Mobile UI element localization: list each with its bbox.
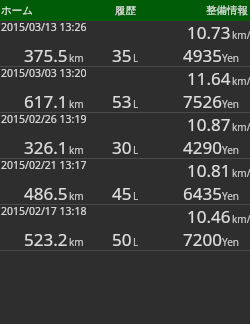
staticText: km/L	[232, 120, 250, 134]
staticText: 10.73	[187, 21, 231, 44]
staticText: ホーム	[1, 4, 33, 17]
staticText: 整備情報	[206, 4, 248, 17]
staticText: Yen	[222, 143, 239, 157]
staticText: L	[133, 143, 139, 157]
staticText: 326.1	[24, 136, 68, 159]
staticText: 523.2	[24, 228, 68, 251]
staticText: km/L	[232, 28, 250, 42]
staticText: 35	[112, 44, 132, 67]
staticText: 10.81	[187, 159, 231, 182]
staticText: L	[133, 189, 139, 203]
staticText: 履歴	[115, 4, 136, 17]
staticText: 10.46	[187, 205, 231, 228]
staticText: 11.64	[187, 67, 231, 90]
staticText: 2015/03/03 13:20	[1, 66, 87, 80]
staticText: 375.5	[24, 44, 68, 67]
staticText: km	[69, 97, 84, 111]
button[interactable]: 2015/02/21 13:17	[0, 159, 250, 204]
staticText: km/L	[232, 212, 250, 226]
staticText: Yen	[222, 235, 239, 249]
staticText: L	[133, 97, 139, 111]
staticText: 30	[112, 136, 132, 159]
button[interactable]: 2015/02/26 13:19	[0, 113, 250, 158]
staticText: 10.87	[187, 113, 231, 136]
staticText: 486.5	[24, 182, 68, 205]
staticText: 6435	[183, 182, 222, 205]
staticText: km	[69, 51, 84, 65]
staticText: Yen	[222, 51, 239, 65]
button[interactable]: 2015/03/13 13:26	[0, 21, 250, 66]
button[interactable]: 履歴	[84, 0, 167, 21]
staticText: 2015/02/21 13:17	[1, 158, 87, 172]
staticText: 45	[112, 182, 132, 205]
button[interactable]: 2015/03/03 13:20	[0, 67, 250, 112]
button[interactable]: 2015/02/17 13:18	[0, 205, 250, 250]
staticText: km	[69, 189, 84, 203]
staticText: km	[69, 235, 84, 249]
staticText: km/L	[232, 74, 250, 88]
staticText: 50	[112, 228, 132, 251]
staticText: 53	[112, 90, 132, 113]
button[interactable]: ホーム	[0, 0, 84, 21]
staticText: 4290	[183, 136, 222, 159]
staticText: 617.1	[24, 90, 68, 113]
staticText: 4935	[183, 44, 222, 67]
staticText: 2015/02/26 13:19	[1, 112, 87, 126]
staticText: L	[133, 51, 139, 65]
staticText: 7526	[183, 90, 222, 113]
staticText: 7200	[183, 228, 222, 251]
staticText: L	[133, 235, 139, 249]
button[interactable]: 整備情報	[167, 0, 250, 21]
staticText: km/L	[232, 166, 250, 180]
staticText: 2015/02/17 13:18	[1, 204, 87, 218]
staticText: Yen	[222, 97, 239, 111]
staticText: km	[69, 143, 84, 157]
staticText: 2015/03/13 13:26	[1, 20, 87, 34]
staticText: Yen	[222, 189, 239, 203]
